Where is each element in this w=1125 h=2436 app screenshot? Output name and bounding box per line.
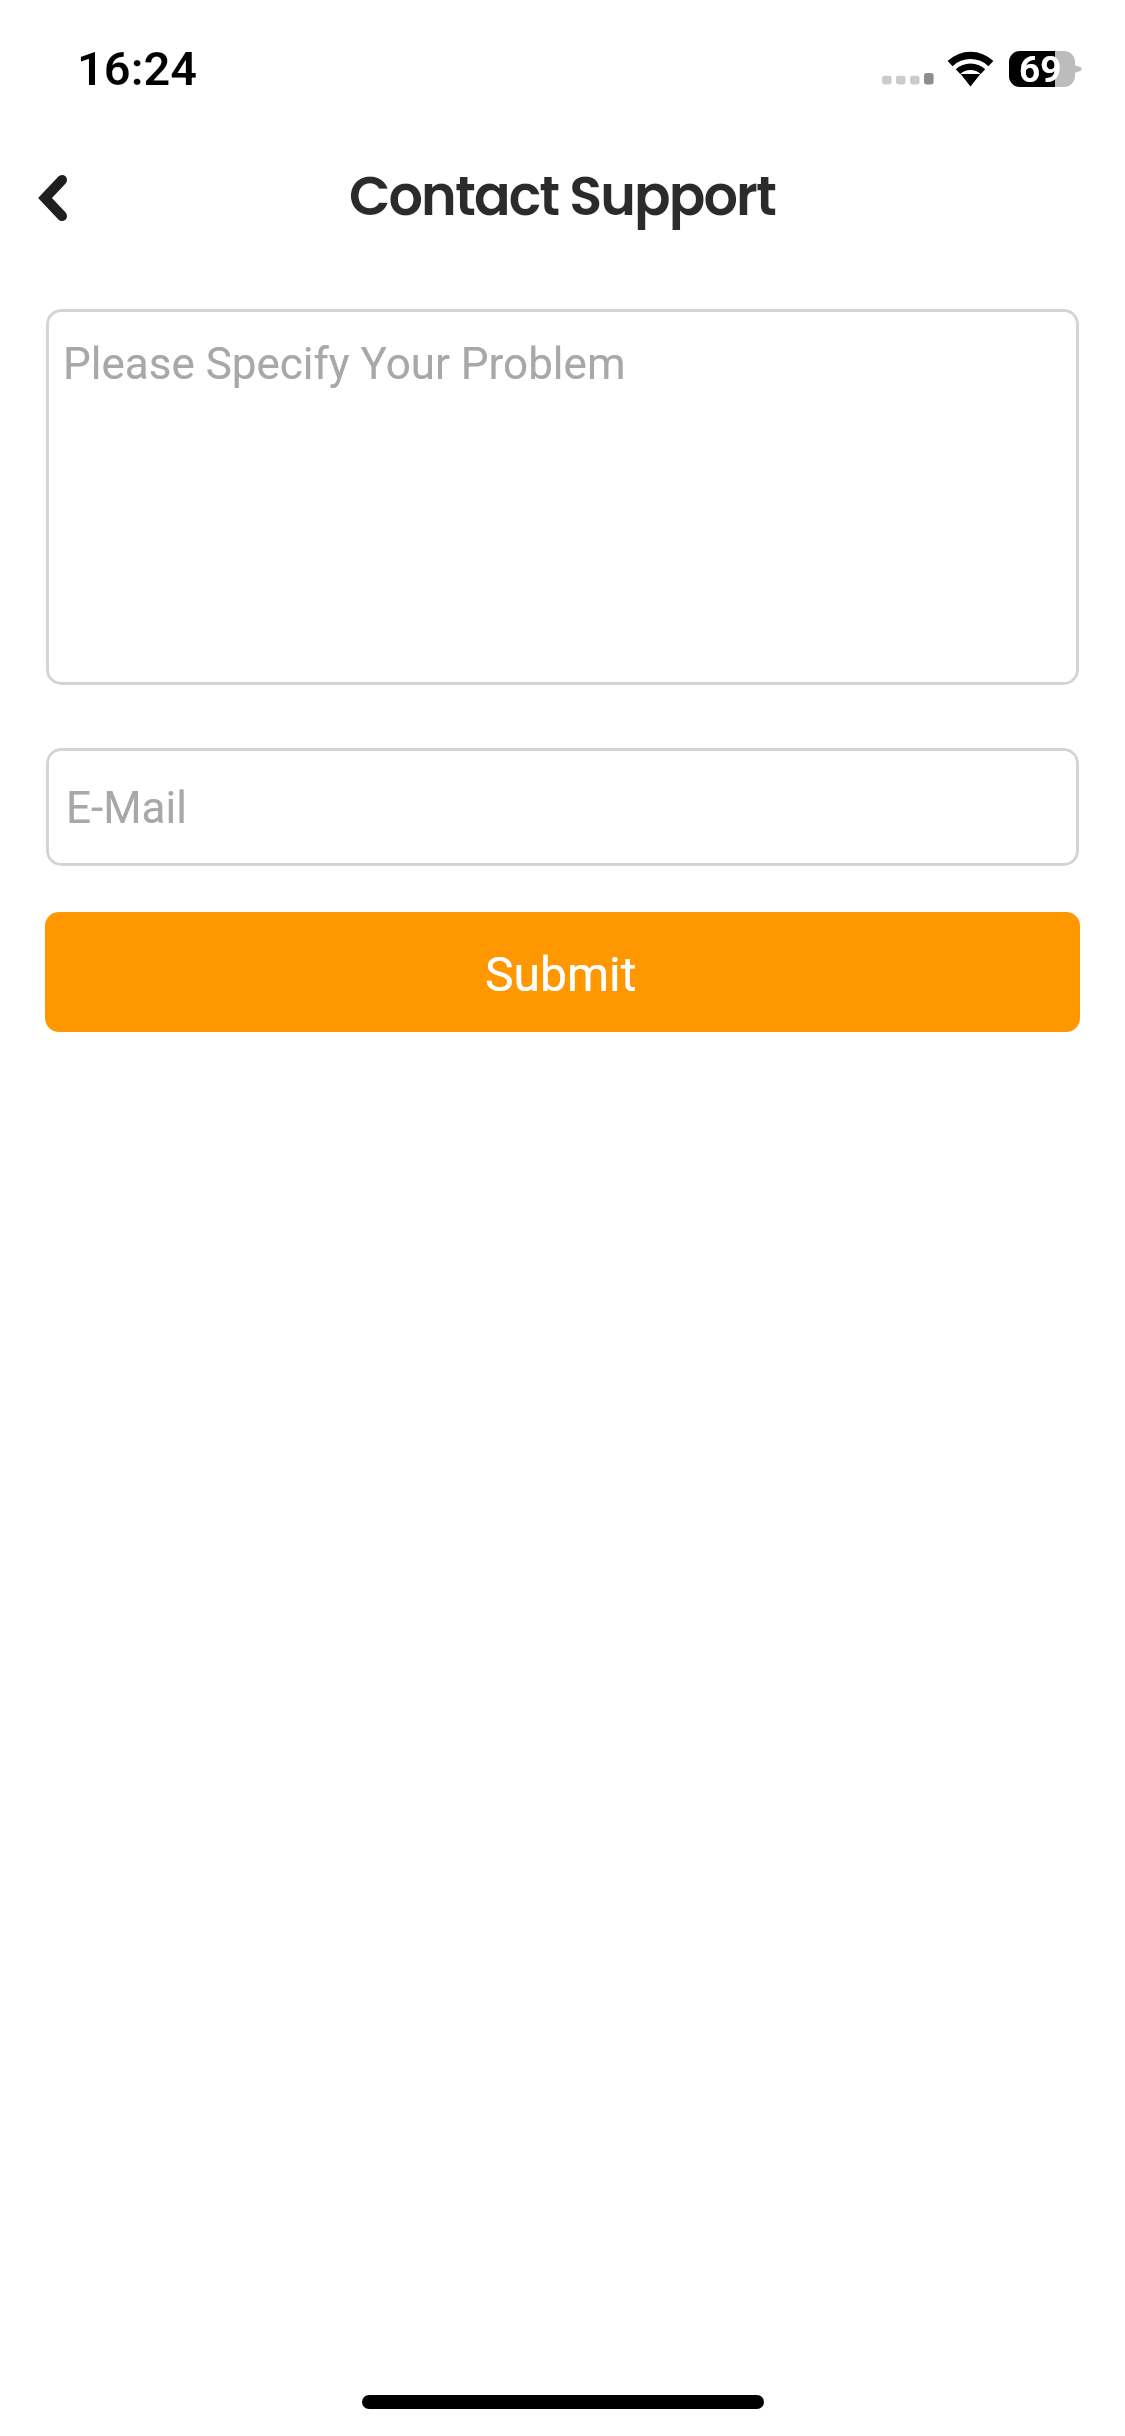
staticText: 16:24 [77,41,198,96]
staticText: 69 [1019,48,1062,91]
staticText: E-Mail [66,782,187,834]
button[interactable]: Please Specify Your Problem [46,309,1079,685]
staticText: Submit [485,946,637,1002]
staticText: Please Specify Your Problem [63,338,626,390]
button[interactable]: Submit [45,912,1080,1032]
button[interactable]: E-Mail [46,748,1079,866]
other: Signal, Wi-Fi and battery status [870,40,1095,100]
staticText: Contact Support [349,158,776,234]
button[interactable]: Back [12,152,104,244]
